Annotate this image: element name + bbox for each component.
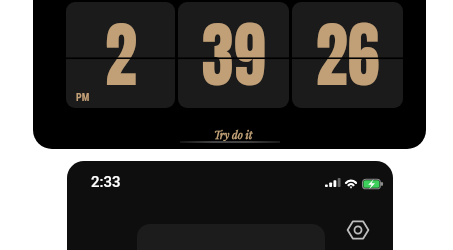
button[interactable]: Settings	[345, 217, 371, 243]
button[interactable]: 39	[178, 2, 289, 108]
button[interactable]: 2	[66, 2, 175, 108]
staticText: 2:33	[91, 173, 121, 191]
staticText: 2	[105, 2, 137, 107]
staticText: PM	[76, 92, 90, 104]
button[interactable]: 26	[292, 2, 403, 108]
staticText: 26	[315, 2, 380, 107]
staticText: 39	[201, 2, 266, 107]
staticText: Try do it	[214, 128, 253, 142]
